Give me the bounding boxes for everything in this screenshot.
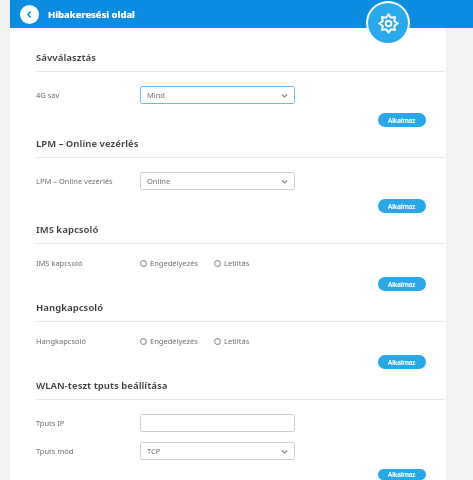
button[interactable]: Alkalmaz — [378, 199, 426, 213]
button[interactable]: Alkalmaz — [378, 355, 426, 369]
button[interactable]: Mind — [140, 86, 295, 104]
staticText: WLAN-teszt tputs beállítása — [36, 379, 168, 392]
staticText: Engedélyezés — [150, 258, 198, 268]
staticText: Letiltás — [224, 336, 250, 346]
button[interactable]: Online — [140, 172, 295, 190]
staticText: IMS kapcsoló — [36, 223, 99, 236]
button[interactable]: Letiltás — [214, 336, 250, 346]
staticText: Engedélyezés — [150, 336, 198, 346]
staticText: LPM – Online vezérlés — [36, 137, 139, 150]
button[interactable]: Engedélyezés — [140, 258, 198, 268]
staticText: Tputs IP — [36, 418, 65, 428]
button[interactable]: Tputs IP input — [140, 414, 295, 432]
button[interactable]: Alkalmaz — [378, 277, 426, 291]
button[interactable]: Settings — [368, 3, 408, 43]
staticText: LPM – Online vezérlés — [36, 176, 113, 186]
button[interactable]: Alkalmaz — [378, 113, 426, 127]
staticText: Hangkapcsoló — [36, 336, 87, 346]
staticText: 4G sáv — [36, 90, 60, 100]
staticText: Alkalmaz — [388, 470, 416, 479]
staticText: TCP — [147, 446, 161, 456]
staticText: Alkalmaz — [388, 202, 416, 211]
button[interactable]: Engedélyezés — [140, 336, 198, 346]
staticText: Alkalmaz — [388, 280, 416, 289]
staticText: Tputs mód — [36, 446, 74, 456]
staticText: Letiltás — [224, 258, 250, 268]
button[interactable]: Back — [20, 5, 39, 24]
button[interactable]: TCP — [140, 442, 295, 460]
staticText: Mind — [147, 90, 165, 100]
staticText: Sávválasztás — [36, 51, 97, 64]
staticText: Alkalmaz — [388, 116, 416, 125]
staticText: Online — [147, 176, 171, 186]
staticText: Alkalmaz — [388, 358, 416, 367]
staticText: Hibakeresési oldal — [48, 8, 135, 21]
staticText: Hangkapcsoló — [36, 301, 104, 314]
staticText: IMS kapcsoló — [36, 258, 83, 268]
button[interactable]: Letiltás — [214, 258, 250, 268]
button[interactable]: Alkalmaz — [378, 469, 426, 480]
